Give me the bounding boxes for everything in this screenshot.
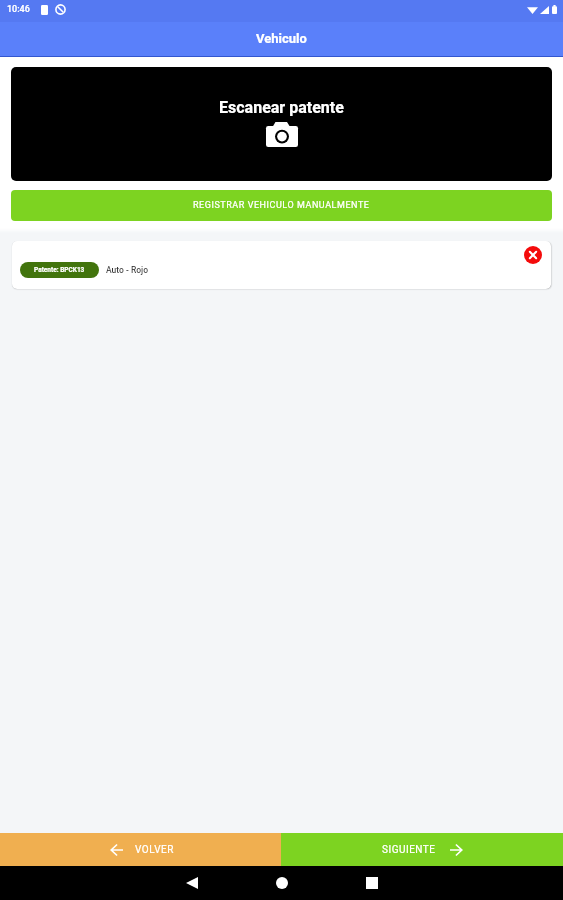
- staticText: Vehiculo: [256, 31, 307, 46]
- staticText: Patente: BPCK13: [34, 266, 85, 274]
- button[interactable]: VOLVER: [0, 833, 281, 866]
- button[interactable]: Patente: BPCK13: [12, 241, 551, 289]
- button[interactable]: Eliminar vehiculo: [524, 246, 542, 264]
- staticText: Escanear patente: [219, 98, 344, 117]
- button[interactable]: Back: [175, 866, 209, 900]
- staticText: SIGUIENTE: [382, 844, 436, 856]
- button[interactable]: Recent apps: [355, 866, 389, 900]
- staticText: VOLVER: [135, 844, 174, 856]
- button[interactable]: Escanear patente: [11, 67, 552, 181]
- staticText: 10:46: [7, 4, 30, 15]
- button[interactable]: Home: [265, 866, 299, 900]
- staticText: REGISTRAR VEHICULO MANUALMENTE: [193, 200, 370, 211]
- staticText: Auto - Rojo: [106, 265, 149, 275]
- button[interactable]: REGISTRAR VEHICULO MANUALMENTE: [11, 190, 552, 221]
- button[interactable]: SIGUIENTE: [281, 833, 563, 866]
